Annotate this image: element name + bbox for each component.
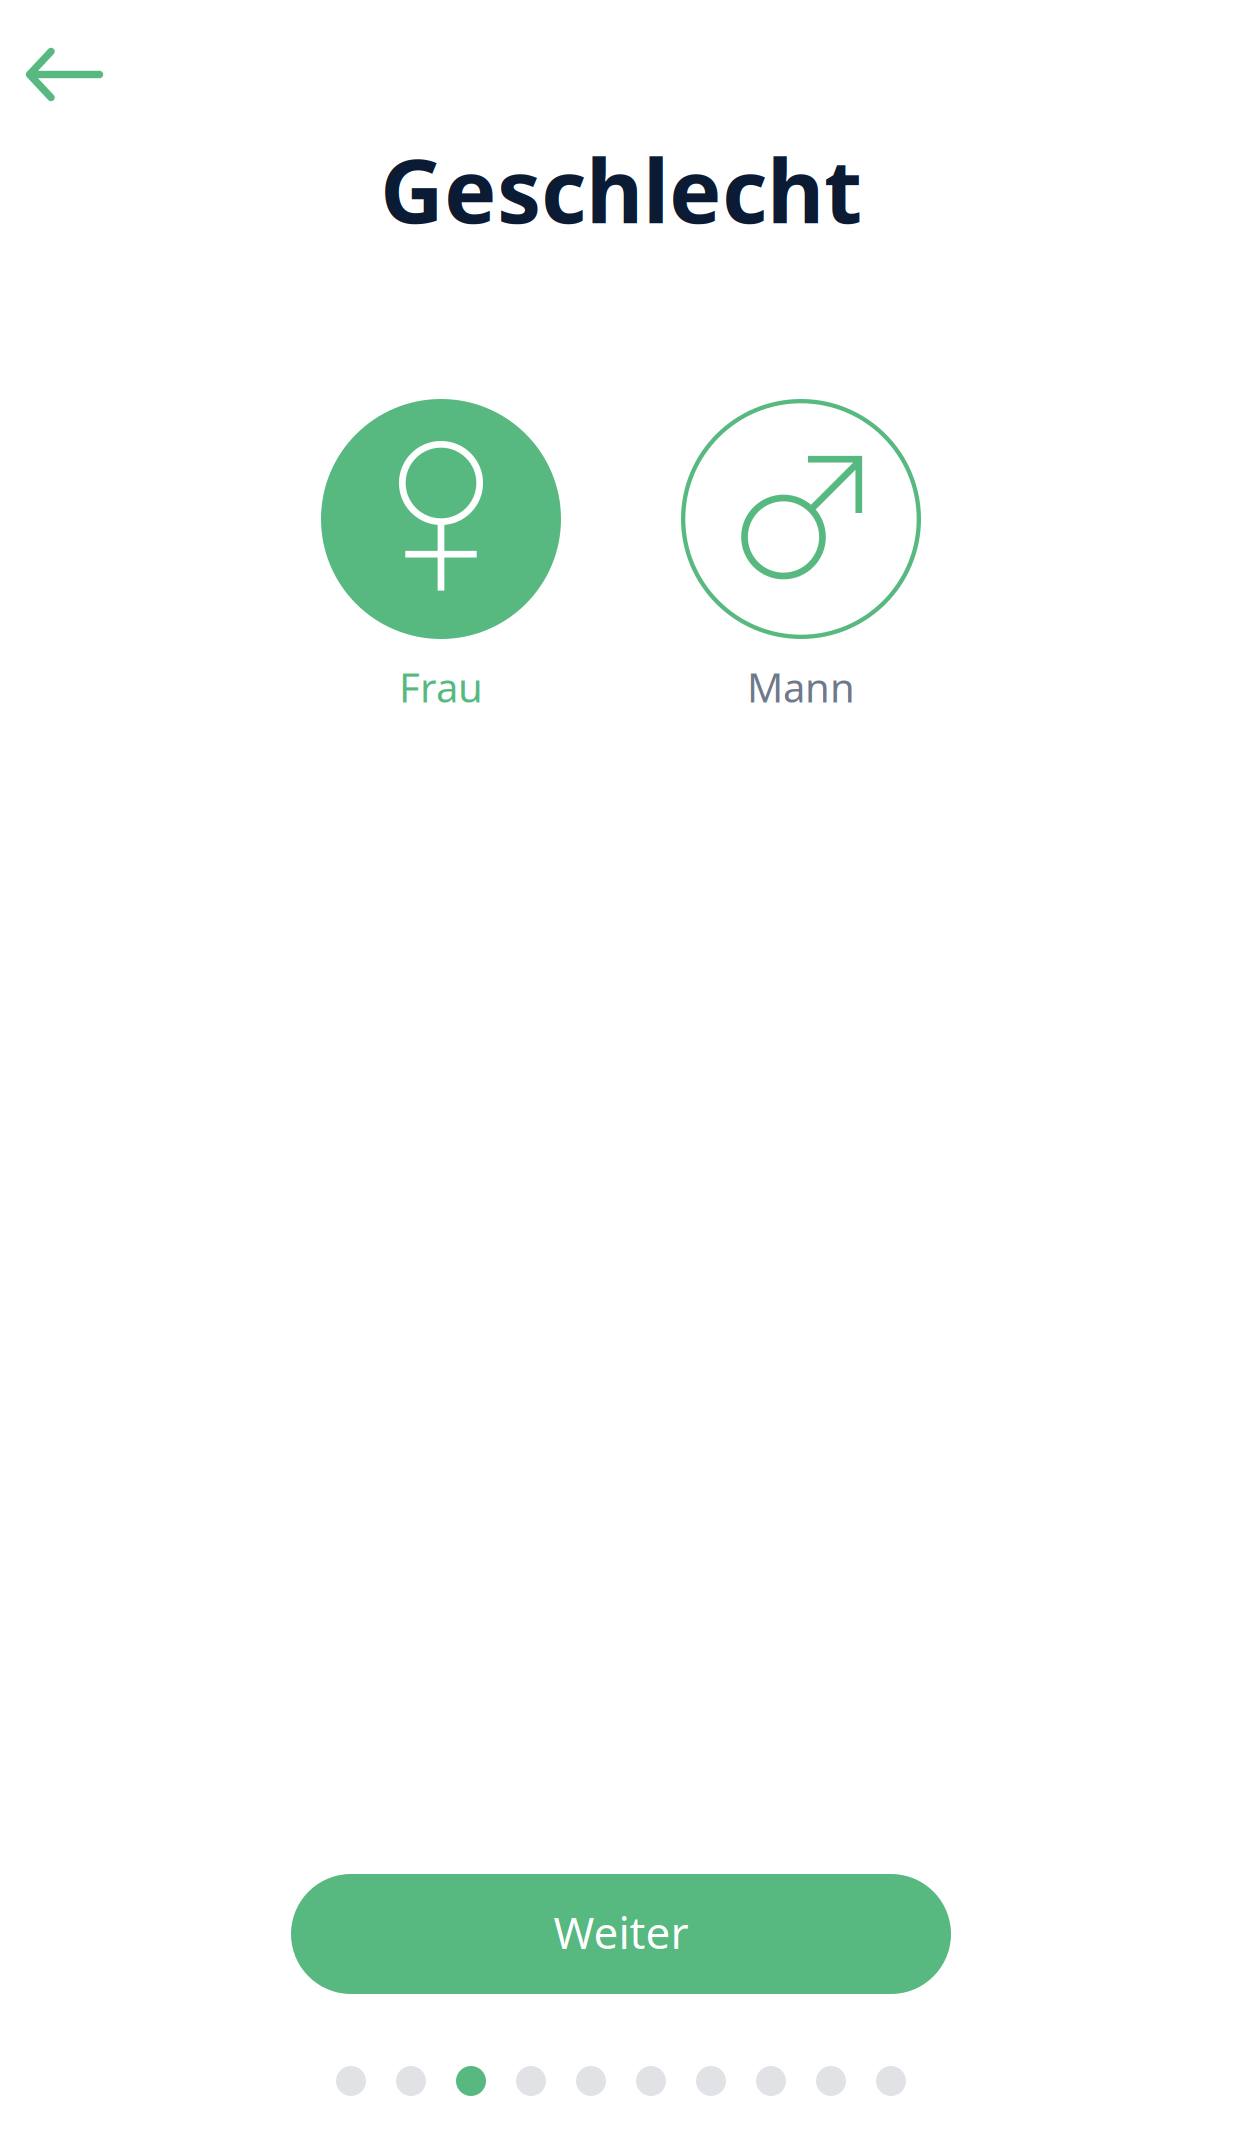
button[interactable]: Frau [291, 399, 591, 702]
staticText: Geschlecht [380, 131, 862, 247]
button[interactable]: Weiter [291, 1874, 951, 1994]
button[interactable]: Back [0, 14, 129, 134]
staticText: Mann [747, 660, 855, 713]
button[interactable]: Mann [651, 399, 951, 702]
staticText: Weiter [553, 1903, 688, 1961]
staticText: Frau [399, 660, 483, 713]
